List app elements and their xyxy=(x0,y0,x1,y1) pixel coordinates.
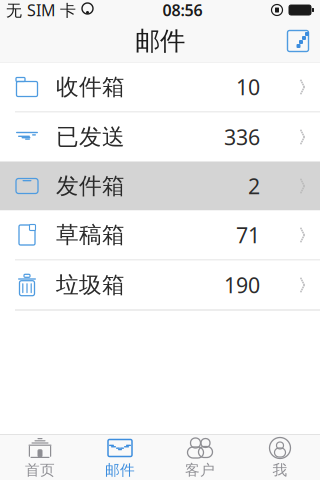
button[interactable]: 我 xyxy=(240,434,320,480)
button[interactable]: 客户 xyxy=(160,434,240,480)
staticText: 10 xyxy=(236,73,260,101)
staticText: 336 xyxy=(224,123,260,151)
button[interactable]: 草稿箱 xyxy=(0,210,320,259)
button[interactable]: 收件箱 xyxy=(0,62,320,111)
staticText: 草稿箱 xyxy=(56,221,125,249)
button[interactable]: 邮件 xyxy=(80,434,160,480)
button[interactable]: 首页 xyxy=(0,434,80,480)
staticText: 2 xyxy=(248,172,260,200)
staticText: 71 xyxy=(236,221,260,249)
staticText: 无 SIM 卡 xyxy=(6,0,76,21)
staticText: 190 xyxy=(224,271,260,299)
staticText: 发件箱 xyxy=(56,172,125,200)
staticText: 邮件 xyxy=(105,461,135,479)
staticText: 首页 xyxy=(25,461,55,479)
staticText: 邮件 xyxy=(135,25,185,56)
button[interactable]: 已发送 xyxy=(0,112,320,161)
staticText: 客户 xyxy=(185,461,215,479)
staticText: 我 xyxy=(272,461,287,479)
staticText: 垃圾箱 xyxy=(56,271,125,299)
staticText: 收件箱 xyxy=(56,73,125,101)
button[interactable]: 撰写新邮件 xyxy=(276,21,320,61)
staticText: 已发送 xyxy=(56,123,125,151)
button[interactable]: 发件箱 xyxy=(0,161,320,210)
button[interactable]: 垃圾箱 xyxy=(0,260,320,309)
staticText: 08:56 xyxy=(162,0,202,21)
